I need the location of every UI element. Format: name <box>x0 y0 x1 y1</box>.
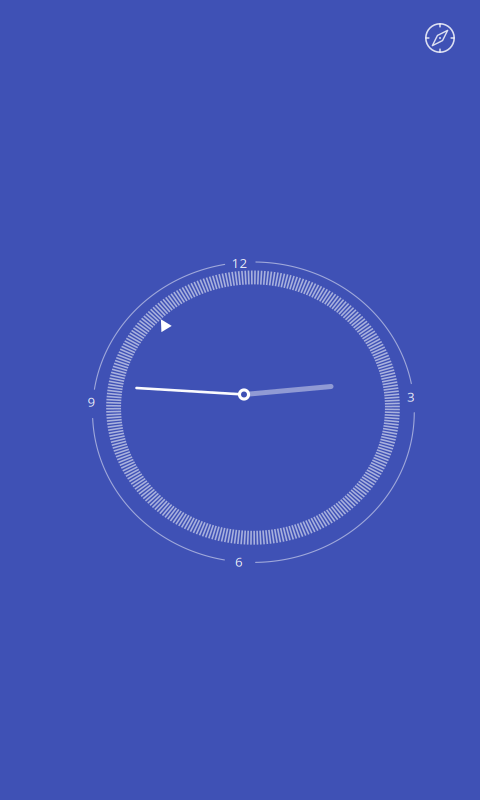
button[interactable]: Compass <box>422 20 458 56</box>
staticText: 6 <box>235 553 243 570</box>
staticText: 9 <box>87 393 95 410</box>
staticText: 3 <box>407 388 415 405</box>
staticText: 12 <box>232 254 248 272</box>
